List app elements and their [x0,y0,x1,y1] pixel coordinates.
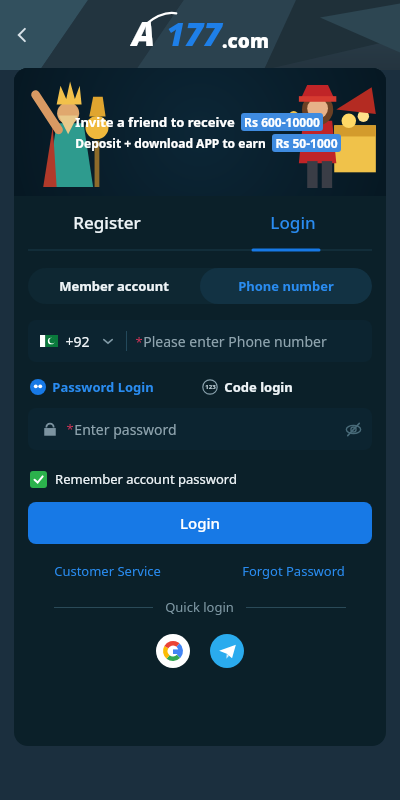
staticText: Quick login [165,598,234,616]
button[interactable]: +92 [28,320,372,362]
button[interactable]: Member account [28,268,200,304]
staticText: Invite a friend to receive [75,113,235,131]
button[interactable]: Forgot Password [200,562,386,580]
staticText: Member account [59,277,169,295]
button[interactable]: Show password [338,414,368,444]
staticText: Forgot Password [242,562,345,580]
button[interactable]: 123 [202,378,293,396]
button[interactable]: Login [28,502,372,544]
button[interactable]: Back [4,17,40,53]
staticText: Rs 50-1000 [275,135,338,151]
staticText: Password Login [52,378,154,396]
staticText: Customer Service [54,562,161,580]
button[interactable]: Sign in with Google [156,634,190,668]
button[interactable]: Sign in with Telegram [210,634,244,668]
button[interactable]: Password Login [30,378,154,396]
staticText: * [66,420,74,438]
staticText: Rs 600-10000 [244,114,320,130]
staticText: .com [222,28,269,54]
staticText: Enter password [74,420,177,439]
staticText: Register [73,211,141,234]
button[interactable]: Customer Service [14,562,200,580]
button[interactable]: Phone number [200,268,372,304]
button[interactable]: Login [200,196,386,248]
button[interactable]: Register [14,196,200,248]
staticText: Remember account password [55,470,237,488]
staticText: Login [270,211,316,234]
button[interactable]: * [28,408,372,450]
staticText: 123 [205,383,216,391]
staticText: Please enter Phone number [143,332,327,351]
staticText: Login [180,513,220,533]
staticText: Phone number [238,277,334,295]
staticText: Deposit + download APP to earn [75,135,266,151]
staticText: Code login [224,378,293,396]
button[interactable]: Remember account password [30,470,237,488]
staticText: A [132,10,155,56]
staticText: +92 [65,332,90,351]
staticText: * [135,333,143,351]
staticText: 177 [166,12,222,56]
